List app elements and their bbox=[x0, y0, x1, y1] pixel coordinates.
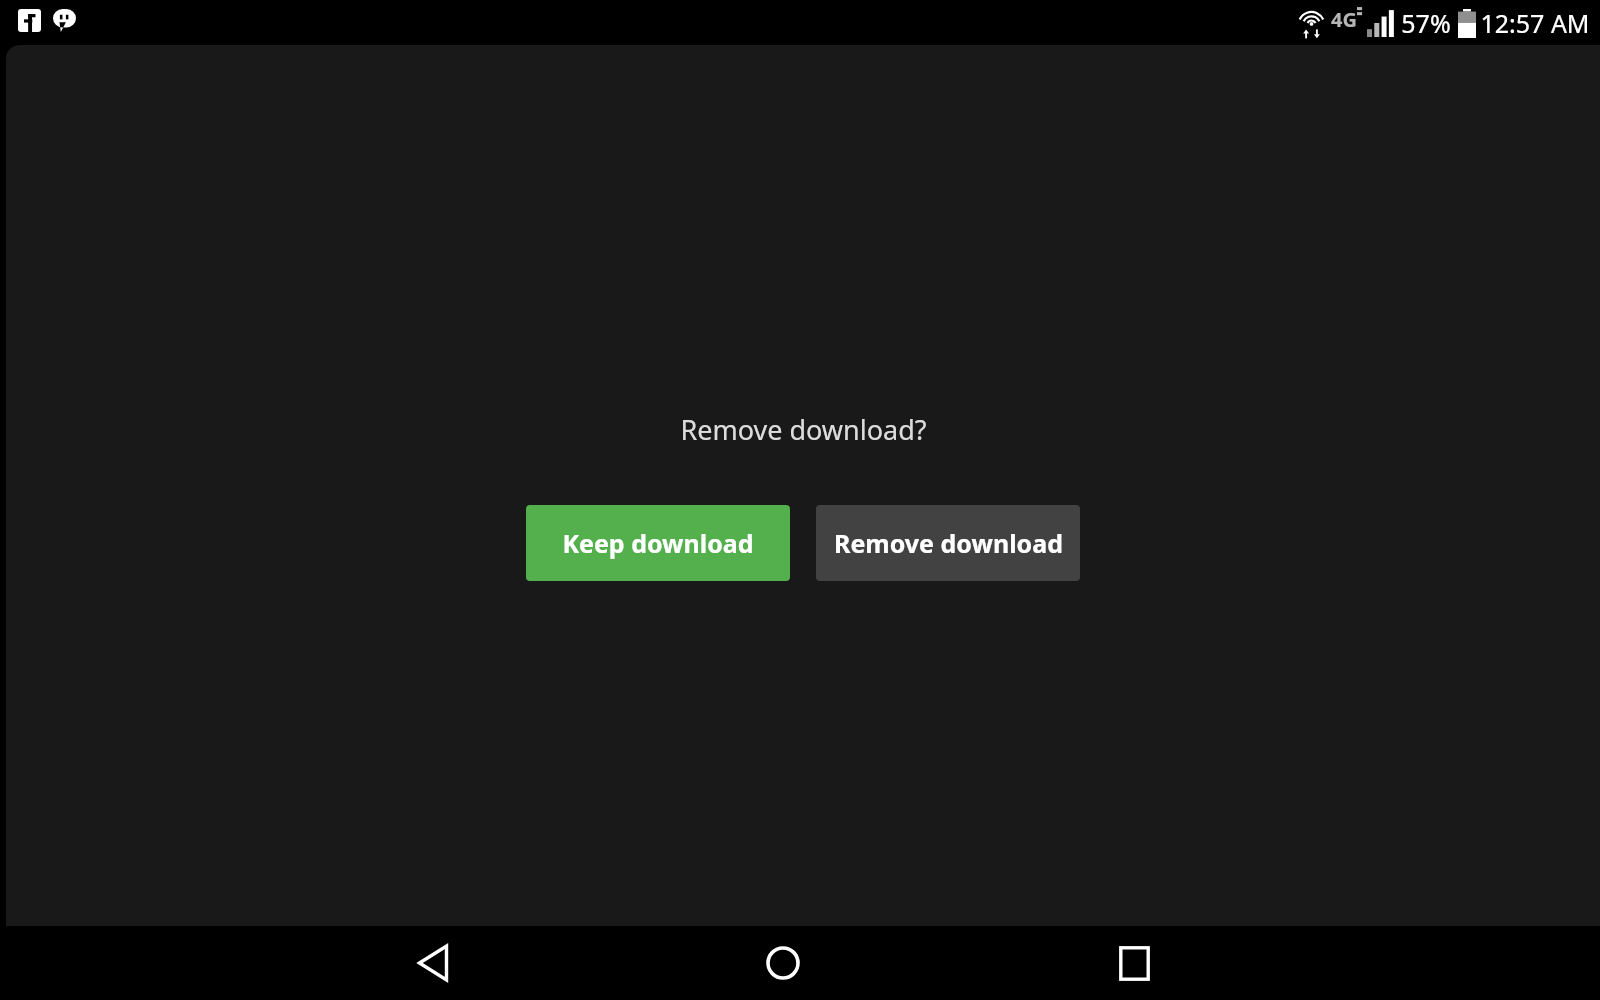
button[interactable]: Home bbox=[733, 926, 833, 1000]
button[interactable]: Remove download bbox=[816, 505, 1080, 581]
button[interactable]: Keep download bbox=[526, 505, 790, 581]
staticText: Remove download bbox=[834, 526, 1063, 560]
staticText: 4G bbox=[1331, 6, 1357, 33]
button[interactable]: Back bbox=[383, 926, 483, 1000]
staticText: Keep download bbox=[562, 526, 754, 560]
staticText: 12:57 AM bbox=[1480, 6, 1590, 40]
staticText: Remove download? bbox=[680, 411, 927, 448]
staticText: 57% bbox=[1401, 6, 1451, 40]
button[interactable]: Recent apps bbox=[1084, 926, 1184, 1000]
